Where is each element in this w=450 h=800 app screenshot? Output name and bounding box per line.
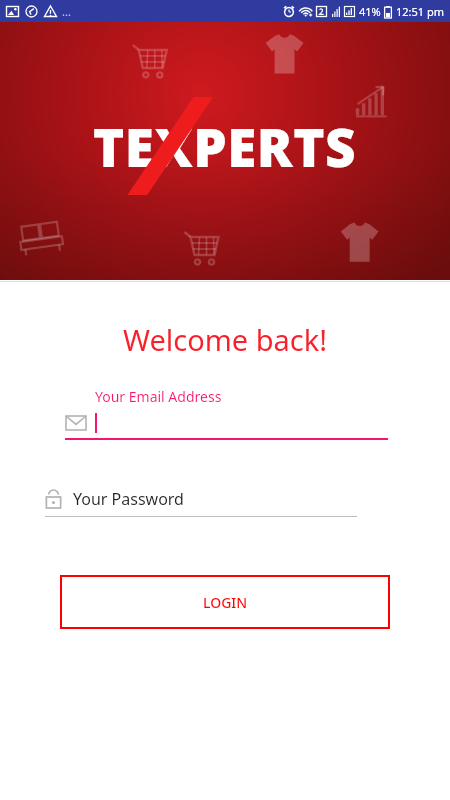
staticText: 12:51 pm	[396, 4, 445, 19]
staticText: ...	[62, 4, 71, 19]
staticText: 41%	[359, 4, 381, 19]
staticText: LOGIN	[203, 593, 248, 612]
staticText: Your Email Address	[95, 387, 222, 406]
other: Password	[45, 489, 62, 509]
other: Email	[65, 414, 87, 432]
staticText: Your Password	[73, 488, 184, 510]
button[interactable]: Password	[45, 488, 357, 517]
button[interactable]: Your Email Address	[65, 387, 388, 440]
staticText: Welcome back!	[0, 320, 450, 359]
button[interactable]: LOGIN	[61, 576, 389, 628]
staticText: TEXPERTS	[93, 110, 357, 182]
